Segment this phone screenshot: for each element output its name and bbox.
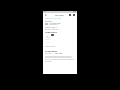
staticText: Paid with [45,52,52,54]
button[interactable]: Share [68,13,72,17]
staticText: ●▲▮ [73,11,76,13]
staticText: Arrives Tue Jun 4 [45,26,57,28]
staticText: Total paid [45,49,57,52]
staticText: Order confirmed today [45,17,62,19]
staticText: 9:41 [44,11,47,13]
staticText: My order [55,14,64,17]
staticText: Tracking 1Z9999W9 [45,28,59,30]
staticText: Your items [45,31,57,34]
staticText: Order summary [45,46,56,48]
button[interactable]: Back [44,13,48,17]
staticText: Questions about your order? Reply to thi… [45,55,75,63]
staticText: Visa 4242 [55,52,63,54]
staticText: 123 Maple Street [49,22,61,24]
staticText: Springfield CA [49,24,59,26]
staticText: Delivery [45,20,53,23]
button[interactable]: More options [72,13,76,17]
